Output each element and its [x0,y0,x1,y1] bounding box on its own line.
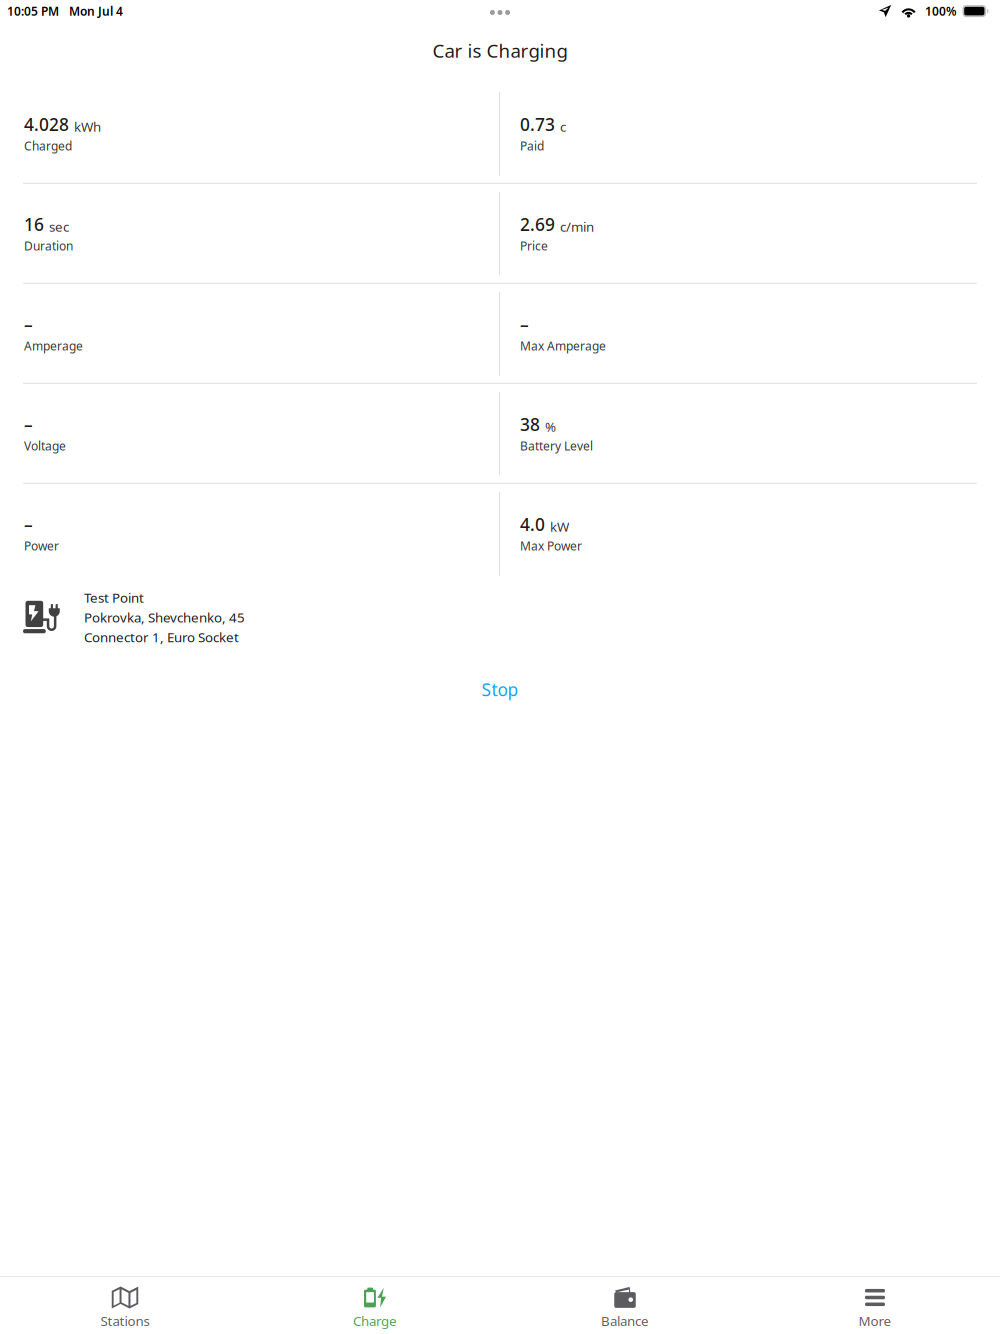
staticText: Balance [601,1312,649,1330]
staticText: 4.0 [520,513,545,536]
staticText: Max Amperage [520,338,606,354]
button[interactable]: Stop [0,673,1000,706]
staticText: Voltage [24,438,66,454]
staticText: Pokrovka, Shevchenko, 45 [84,608,245,626]
staticText: Paid [520,138,544,154]
button[interactable]: Charge [250,1277,500,1334]
staticText: 100% [925,3,957,19]
staticText: More [858,1312,891,1330]
button[interactable]: More [750,1277,1000,1334]
staticText: 10:05 PM [7,3,59,19]
staticText: Stop [481,678,518,701]
staticText: Mon Jul 4 [69,3,123,19]
staticText: kWh [74,118,101,135]
button[interactable]: Balance [500,1277,750,1334]
staticText: Test Point [84,589,144,606]
staticText: Price [520,238,548,254]
staticText: – [24,513,33,536]
staticText: 4.028 [24,113,69,136]
staticText: Car is Charging [432,38,567,63]
staticText: Charged [24,138,72,154]
staticText: % [545,418,556,435]
staticText: Power [24,538,59,554]
staticText: – [24,313,33,336]
staticText: kW [550,518,569,535]
staticText: 0.73 [520,113,555,136]
staticText: Duration [24,238,73,254]
staticText: – [24,413,33,436]
staticText: 2.69 [520,213,555,236]
staticText: Connector 1, Euro Socket [84,628,239,646]
staticText: Max Power [520,538,582,554]
staticText: 16 [24,213,44,236]
staticText: 38 [520,413,540,436]
staticText: Charge [353,1312,397,1330]
staticText: sec [49,218,69,235]
staticText: – [520,313,529,336]
staticText: c [560,118,566,135]
button[interactable]: Stations [0,1277,250,1334]
staticText: c/min [560,218,594,235]
staticText: Battery Level [520,438,593,454]
staticText: Amperage [24,338,83,354]
staticText: Stations [100,1312,149,1330]
